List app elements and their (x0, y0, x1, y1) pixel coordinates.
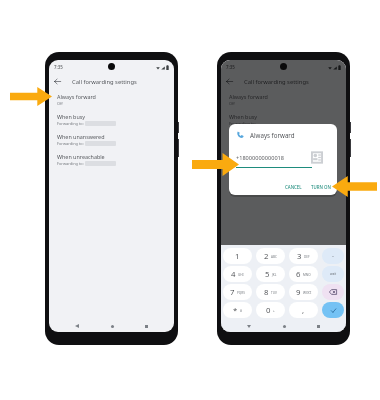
staticText: 7:35 (54, 64, 63, 70)
button[interactable]: , (289, 302, 318, 318)
staticText: 3 (297, 251, 302, 262)
button[interactable]: Home (106, 320, 118, 332)
staticText: CANCEL (285, 184, 302, 190)
staticText: , (302, 305, 305, 316)
staticText: DEF (304, 255, 310, 259)
staticText: Always forward (229, 93, 268, 100)
button[interactable]: 1 (223, 248, 252, 264)
staticText: TURN ON (311, 184, 331, 190)
button[interactable]: Back (71, 320, 83, 332)
button[interactable]: Navigate up (223, 75, 236, 88)
staticText: WXYZ (303, 291, 312, 295)
button[interactable]: 4 (223, 266, 252, 282)
staticText: 4 (231, 269, 236, 280)
button[interactable]: When busy (49, 109, 174, 129)
staticText: +18000000000018 (236, 154, 284, 162)
button[interactable]: 3 (289, 248, 318, 264)
button[interactable]: Navigate up (51, 75, 64, 88)
staticText: + (273, 309, 275, 313)
button[interactable]: 0 (256, 302, 285, 318)
button[interactable]: Backspace (322, 284, 344, 300)
staticText: 8 (264, 287, 269, 298)
staticText: 1 (235, 251, 240, 262)
button[interactable]: Dash (322, 248, 344, 264)
staticText: 6 (296, 269, 301, 280)
button[interactable]: 8 (256, 284, 285, 300)
button[interactable]: Hide keyboard (243, 320, 255, 332)
staticText: Forwarding to: (57, 121, 85, 126)
staticText: Always forward (57, 93, 96, 100)
staticText: GHI (238, 273, 244, 277)
button[interactable]: Recent apps (140, 320, 152, 332)
staticText: When busy (229, 113, 258, 120)
staticText: Forwarding to: (229, 121, 256, 126)
button[interactable]: TURN ON (308, 181, 334, 193)
staticText: ABC (271, 255, 277, 259)
staticText: - (332, 252, 334, 260)
button[interactable]: 9 (289, 284, 318, 300)
button[interactable]: When unanswered (49, 129, 174, 149)
staticText: 7:35 (226, 64, 235, 70)
button[interactable]: Enter (322, 302, 344, 318)
staticText: 5 (265, 269, 270, 280)
staticText: Always forward (250, 131, 295, 139)
staticText: When unreachable (57, 153, 105, 160)
staticText: Off (57, 101, 63, 106)
staticText: Forwarding to: (57, 161, 85, 166)
staticText: Call forwarding settings (244, 78, 309, 86)
button[interactable]: CANCEL (282, 181, 305, 193)
staticText: Off (229, 101, 235, 106)
staticText: TUV (271, 291, 277, 295)
button[interactable]: Home (278, 320, 290, 332)
button[interactable]: 6 (289, 266, 318, 282)
button[interactable]: When unreachable (49, 149, 174, 169)
button[interactable]: Wait (322, 266, 344, 282)
staticText: 0 (266, 305, 271, 316)
staticText: 7 (230, 287, 235, 298)
button[interactable]: Choose contact (309, 149, 325, 165)
button[interactable]: * (223, 302, 252, 318)
staticText: When unanswered (229, 133, 277, 140)
staticText: # (240, 309, 242, 313)
button[interactable]: Always forward (49, 89, 174, 109)
staticText: 9 (296, 287, 301, 298)
staticText: When busy (57, 113, 86, 120)
button[interactable]: 5 (256, 266, 285, 282)
staticText: * (233, 305, 238, 316)
button[interactable]: Recent apps (312, 320, 324, 332)
staticText: Call forwarding settings (72, 78, 137, 86)
staticText: MNO (303, 273, 311, 277)
staticText: wait (330, 272, 337, 276)
staticText: JKL (272, 273, 277, 277)
button[interactable]: 2 (256, 248, 285, 264)
staticText: Forwarding to: (57, 141, 85, 146)
staticText: PQRS (237, 291, 245, 295)
staticText: 2 (264, 251, 269, 262)
staticText: When unanswered (57, 133, 105, 140)
button[interactable]: 7 (223, 284, 252, 300)
